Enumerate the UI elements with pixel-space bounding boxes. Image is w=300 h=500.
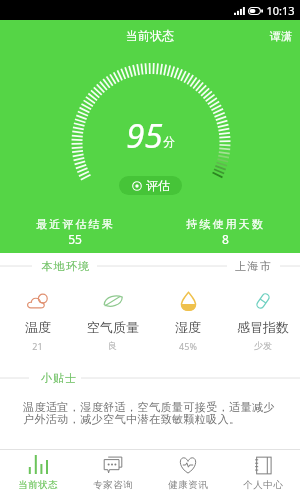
- staticText: 专家咨询: [93, 479, 133, 491]
- staticText: 健康资讯: [168, 479, 208, 491]
- staticText: 评估: [146, 178, 170, 193]
- button[interactable]: 谭潇: [270, 29, 292, 43]
- button[interactable]: 温度: [0, 289, 75, 352]
- button[interactable]: 空气质量: [75, 289, 150, 351]
- button[interactable]: 个人中心: [225, 448, 300, 498]
- staticText: 个人中心: [243, 479, 283, 491]
- staticText: 当前状态: [18, 479, 58, 491]
- button[interactable]: 健康资讯: [150, 448, 225, 498]
- staticText: 8: [222, 231, 229, 247]
- staticText: 上海市: [235, 259, 272, 273]
- staticText: 空气质量: [87, 319, 139, 335]
- staticText: 最近评估结果: [36, 217, 115, 231]
- button[interactable]: 感冒指数: [225, 289, 300, 351]
- staticText: 当前状态: [126, 28, 174, 43]
- staticText: 95: [126, 113, 163, 158]
- staticText: 良: [108, 340, 117, 351]
- staticText: 本地环境: [41, 259, 91, 273]
- button[interactable]: 当前状态: [0, 448, 75, 498]
- staticText: 分: [163, 134, 175, 149]
- button[interactable]: 湿度: [150, 289, 225, 352]
- button[interactable]: 评估: [119, 176, 182, 195]
- staticText: 持续使用天数: [186, 217, 265, 231]
- staticText: 温度适宜，湿度舒适，空气质量可接受，适量减少户外活动，减少空气中潜在致敏颗粒吸入…: [23, 400, 286, 427]
- staticText: 谭潇: [270, 29, 292, 43]
- staticText: 21: [32, 340, 43, 352]
- staticText: 小贴士: [41, 371, 77, 385]
- staticText: 湿度: [175, 319, 201, 335]
- staticText: 45%: [179, 340, 197, 352]
- staticText: 10:13: [266, 3, 295, 18]
- button[interactable]: 专家咨询: [75, 448, 150, 498]
- staticText: 感冒指数: [237, 319, 289, 335]
- staticText: 温度: [25, 319, 51, 335]
- staticText: 少发: [254, 340, 272, 351]
- staticText: 55: [68, 231, 82, 247]
